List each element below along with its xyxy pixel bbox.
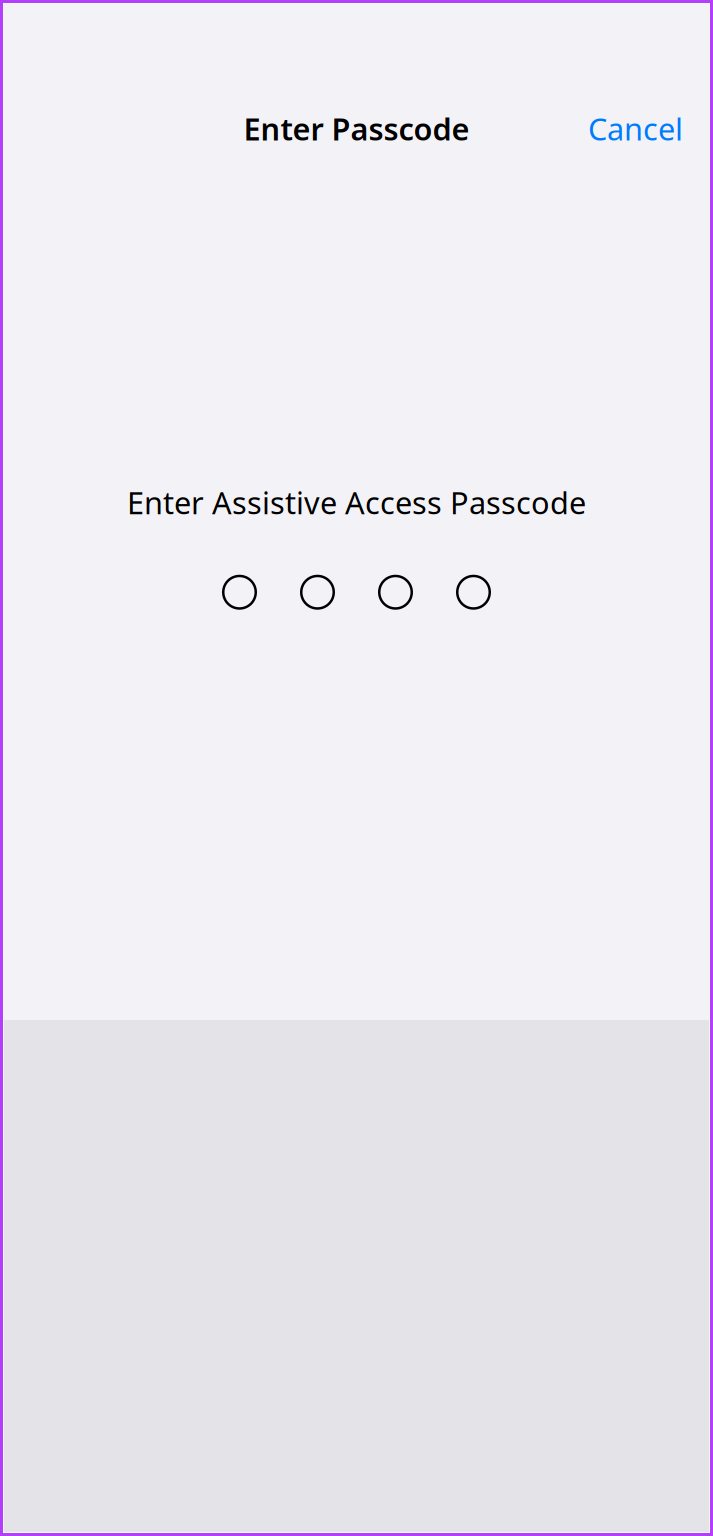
button[interactable]: Cancel	[588, 108, 683, 149]
staticText: Enter Assistive Access Passcode	[127, 482, 586, 523]
staticText: Enter Passcode	[243, 108, 469, 149]
staticText: Cancel	[588, 108, 683, 149]
